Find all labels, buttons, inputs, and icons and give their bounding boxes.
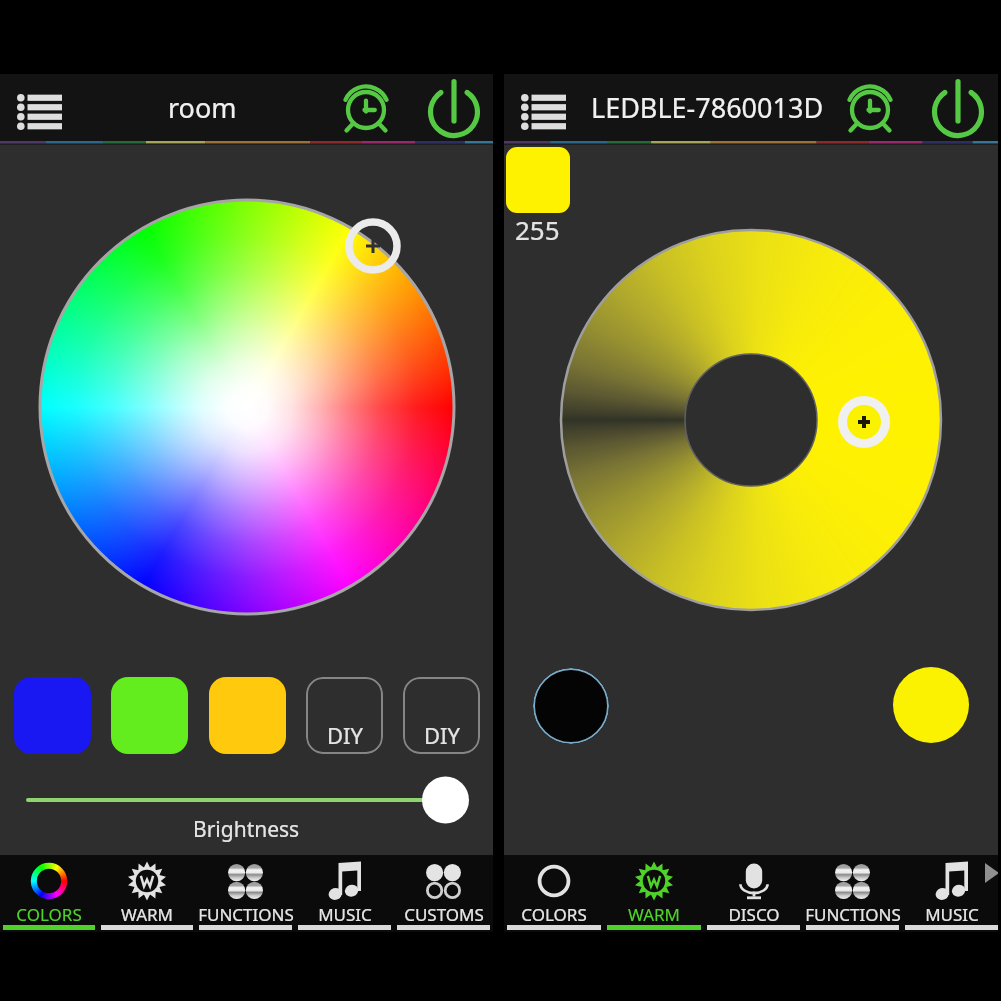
staticText: LEDBLE-7860013D: [591, 89, 824, 126]
button[interactable]: Alarm: [840, 77, 902, 139]
button[interactable]: FUNCTIONS: [803, 855, 902, 932]
staticText: COLORS: [521, 903, 587, 926]
button[interactable]: Current colour: [506, 147, 570, 213]
staticText: DISCO: [728, 903, 780, 926]
button[interactable]: WARM: [604, 855, 704, 932]
staticText: 255: [515, 212, 560, 247]
button[interactable]: Preset colour: [14, 677, 91, 754]
button[interactable]: Alarm: [336, 77, 398, 139]
staticText: FUNCTIONS: [805, 903, 901, 926]
button[interactable]: FUNCTIONS: [196, 855, 295, 932]
button[interactable]: Menu: [512, 86, 574, 138]
button[interactable]: DIY: [306, 677, 383, 754]
staticText: MUSIC: [318, 903, 372, 926]
staticText: Brightness: [193, 815, 300, 844]
button[interactable]: CUSTOMS: [394, 855, 493, 932]
staticText: FUNCTIONS: [198, 903, 294, 926]
button[interactable]: DIY: [403, 677, 480, 754]
staticText: MUSIC: [925, 903, 979, 926]
button[interactable]: Brightness slider: [0, 775, 493, 825]
button[interactable]: WARM: [98, 855, 196, 932]
button[interactable]: Preset colour: [111, 677, 188, 754]
button[interactable]: Black preset: [533, 668, 609, 744]
button[interactable]: Power: [927, 77, 989, 139]
button[interactable]: MUSIC: [902, 855, 1001, 932]
button[interactable]: Preset colour: [209, 677, 286, 754]
other: More tabs: [985, 863, 999, 883]
staticText: WARM: [628, 903, 680, 926]
staticText: WARM: [121, 903, 173, 926]
staticText: room: [168, 89, 237, 126]
button[interactable]: Power: [423, 77, 485, 139]
staticText: COLORS: [16, 903, 82, 926]
button[interactable]: DISCO: [704, 855, 803, 932]
button[interactable]: Menu: [8, 86, 70, 138]
button[interactable]: Warm white wheel: [556, 225, 946, 615]
button[interactable]: COLORS: [0, 855, 98, 932]
button[interactable]: Yellow preset: [893, 667, 969, 743]
staticText: DIY: [424, 720, 460, 750]
button[interactable]: COLORS: [504, 855, 604, 932]
button[interactable]: Colour wheel: [37, 197, 457, 617]
button[interactable]: MUSIC: [295, 855, 394, 932]
staticText: DIY: [327, 720, 363, 750]
staticText: CUSTOMS: [404, 903, 484, 926]
